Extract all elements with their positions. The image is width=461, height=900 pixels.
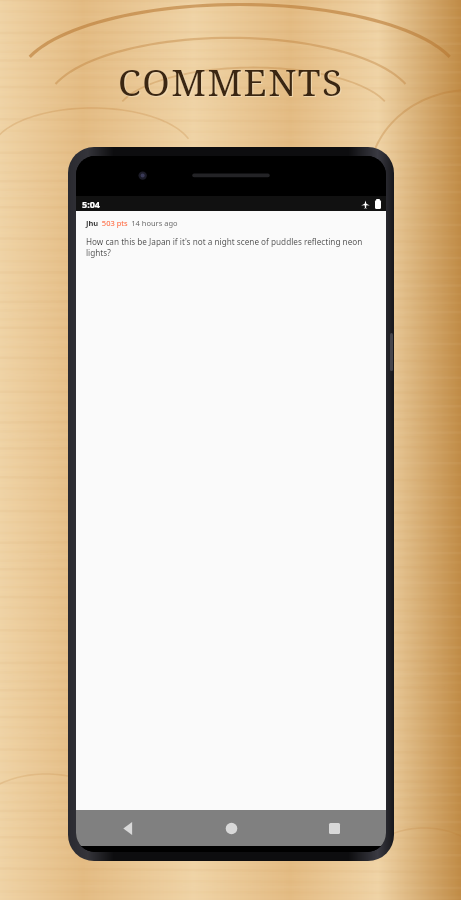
staticText: How can this be Japan if it's not a nigh…: [86, 236, 377, 259]
staticText: 5:04: [82, 198, 100, 210]
staticText: Jhu 503 pts 14 hours ago: [86, 211, 178, 230]
button[interactable]: Recent apps: [283, 810, 386, 846]
button[interactable]: Jhu 503 pts 14 hours ago: [76, 211, 386, 810]
button[interactable]: Back: [76, 810, 180, 846]
button[interactable]: Home: [180, 810, 283, 846]
staticText: COMMENTS: [118, 56, 344, 106]
staticText: COMMENTS: [119, 57, 345, 107]
